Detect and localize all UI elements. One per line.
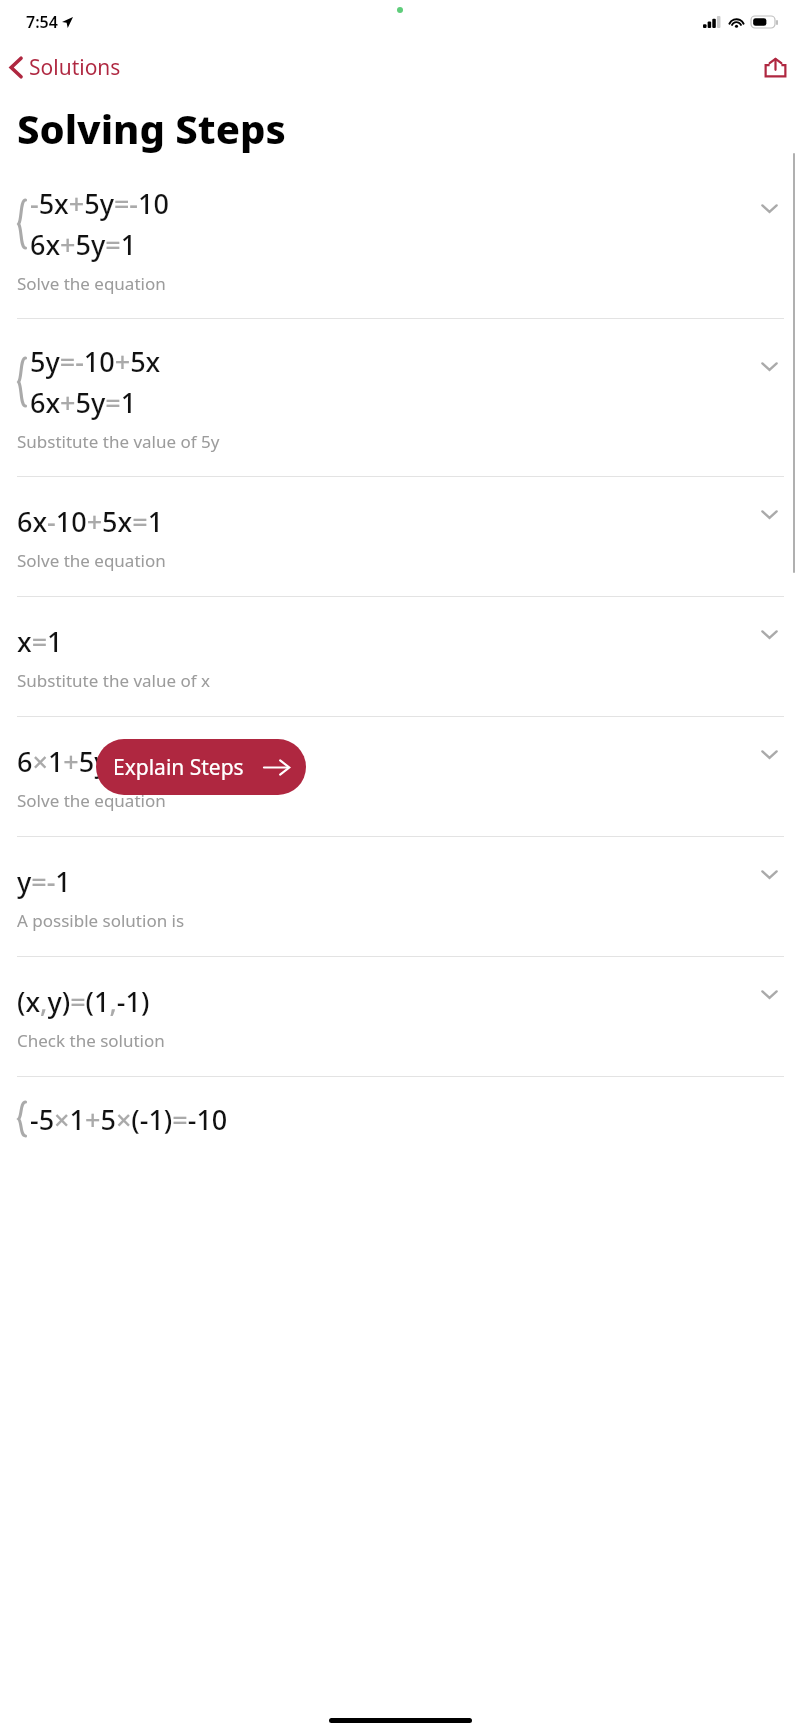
staticText: -5x+5y=-10: [30, 185, 169, 222]
staticText: -5×1+5×(-1)=-10: [30, 1101, 228, 1138]
button[interactable]: 5y=-10+5x: [0, 319, 800, 477]
staticText: Explain Steps: [113, 753, 244, 782]
button[interactable]: (x,y)=(1,-1): [0, 957, 800, 1077]
staticText: A possible solution is: [17, 909, 185, 932]
staticText: 7:54: [26, 11, 58, 33]
staticText: Solve the equation: [17, 549, 166, 572]
staticText: x=1: [17, 623, 63, 660]
staticText: Solve the equation: [17, 272, 166, 295]
button[interactable]: 6x-10+5x=1: [0, 477, 800, 597]
staticText: Solving Steps: [17, 101, 286, 155]
staticText: 6x-10+5x=1: [17, 503, 164, 540]
staticText: Check the solution: [17, 1029, 165, 1052]
staticText: Substitute the value of 5y: [17, 430, 220, 453]
staticText: 6×1+5y=1: [17, 743, 140, 780]
button[interactable]: y=-1: [0, 837, 800, 957]
staticText: y=-1: [17, 863, 71, 900]
button[interactable]: x=1: [0, 597, 800, 717]
staticText: 6x+5y=1: [30, 384, 137, 421]
button[interactable]: Solutions: [0, 47, 133, 88]
button[interactable]: Explain Steps: [96, 739, 306, 795]
staticText: Substitute the value of x: [17, 669, 211, 692]
staticText: Solutions: [29, 53, 121, 82]
button[interactable]: Share: [751, 44, 800, 91]
staticText: 6x+5y=1: [30, 226, 137, 263]
button[interactable]: 6×1+5y=1: [0, 717, 800, 837]
button[interactable]: -5x+5y=-10: [0, 185, 800, 319]
staticText: Solve the equation: [17, 789, 166, 812]
staticText: (x,y)=(1,-1): [17, 983, 150, 1020]
staticText: 5y=-10+5x: [30, 343, 161, 380]
